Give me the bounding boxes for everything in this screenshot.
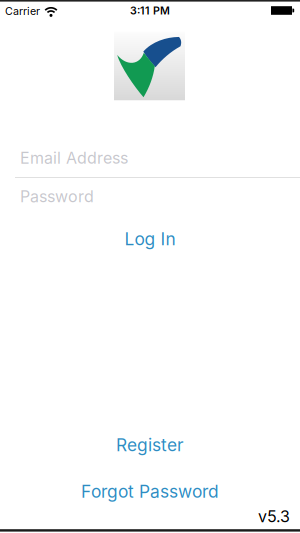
button[interactable]: Register <box>70 430 230 460</box>
staticText: Register <box>116 435 184 455</box>
staticText: Log In <box>124 229 175 249</box>
staticText: Password <box>20 187 94 206</box>
button[interactable]: Password <box>0 177 300 215</box>
staticText: Forgot Password <box>81 481 219 502</box>
button[interactable]: Log In <box>80 224 220 254</box>
staticText: 3:11 PM <box>130 4 170 17</box>
button[interactable]: Forgot Password <box>50 476 250 506</box>
button[interactable]: Email Address <box>0 139 300 177</box>
staticText: v5.3 <box>258 507 290 526</box>
staticText: Email Address <box>20 149 128 167</box>
staticText: Carrier <box>5 5 40 17</box>
